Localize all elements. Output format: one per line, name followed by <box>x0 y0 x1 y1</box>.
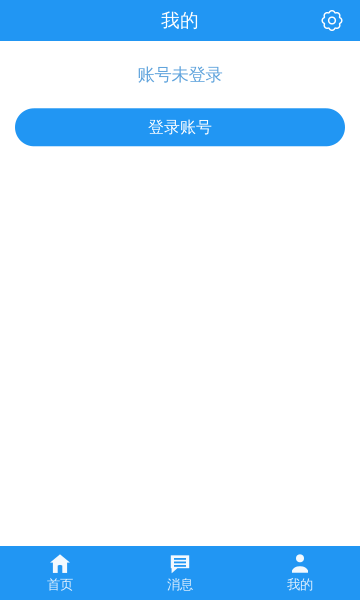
staticText: 首页 <box>47 576 73 593</box>
button[interactable]: 我的 <box>240 546 360 600</box>
button[interactable]: 消息 <box>120 546 240 600</box>
button[interactable]: Settings <box>310 0 354 41</box>
staticText: 消息 <box>167 576 193 593</box>
staticText: 登录账号 <box>148 117 212 137</box>
staticText: 我的 <box>287 576 313 593</box>
staticText: 账号未登录 <box>137 64 222 85</box>
staticText: 我的 <box>161 9 199 32</box>
button[interactable]: 登录账号 <box>15 108 345 146</box>
button[interactable]: 首页 <box>0 546 120 600</box>
